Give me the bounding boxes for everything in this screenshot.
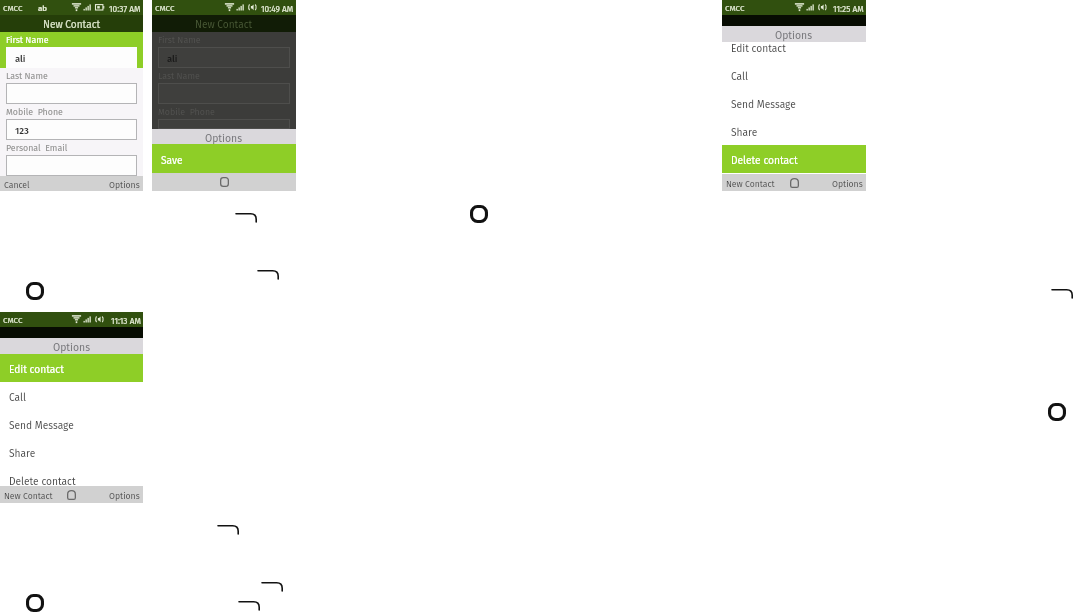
button[interactable]: Edit contact <box>0 354 143 382</box>
staticText: 11:13 AM <box>111 316 141 326</box>
button[interactable]: Mobile Phone <box>152 104 296 129</box>
staticText: 123 <box>15 125 29 136</box>
staticText: First Name <box>6 35 49 46</box>
button[interactable]: Options <box>109 490 143 500</box>
button[interactable]: Options <box>109 179 143 189</box>
staticText: Personal Email <box>6 143 68 154</box>
staticText: New Contact <box>43 19 101 31</box>
staticText: ali <box>15 53 26 64</box>
staticText: New Contact <box>726 179 775 189</box>
staticText: Options <box>775 29 813 41</box>
button[interactable]: Share <box>722 117 866 145</box>
button[interactable]: Send Message <box>0 410 143 438</box>
button[interactable]: New Contact <box>722 178 775 188</box>
staticText: Edit contact <box>731 42 786 54</box>
staticText: CMCC <box>155 4 175 14</box>
staticText: CMCC <box>3 4 23 14</box>
staticText: Share <box>731 126 758 138</box>
button[interactable]: Delete contact <box>0 466 143 486</box>
button[interactable]: Last Name <box>0 68 143 104</box>
staticText: Options <box>832 179 863 189</box>
staticText: Share <box>9 447 36 459</box>
staticText: CMCC <box>725 4 745 14</box>
staticText: Options <box>205 132 243 144</box>
button[interactable]: Last Name <box>152 68 296 104</box>
button[interactable]: Save <box>152 144 296 173</box>
button[interactable]: Edit contact <box>722 42 866 61</box>
staticText: Mobile Phone <box>158 107 215 118</box>
button[interactable]: Call <box>0 382 143 410</box>
button[interactable]: Home <box>220 177 229 187</box>
staticText: First Name <box>158 35 201 46</box>
staticText: Call <box>9 391 27 403</box>
button[interactable]: Call <box>722 61 866 89</box>
button[interactable]: Home <box>67 490 76 500</box>
staticText: New Contact <box>4 491 53 501</box>
staticText: Call <box>731 70 749 82</box>
staticText: Last Name <box>158 71 200 82</box>
staticText: ali <box>167 53 178 64</box>
button[interactable]: Personal Email <box>0 140 143 176</box>
staticText: Delete contact <box>731 154 798 166</box>
staticText: Cancel <box>4 180 30 190</box>
staticText: Send Message <box>9 419 74 431</box>
staticText: 10:37 AM <box>109 4 141 14</box>
staticText: Options <box>53 341 91 353</box>
button[interactable]: Delete contact <box>722 145 866 173</box>
staticText: Delete contact <box>9 475 76 486</box>
button[interactable]: Send Message <box>722 89 866 117</box>
staticText: 10:49 AM <box>261 4 294 14</box>
staticText: Mobile Phone <box>6 107 63 118</box>
staticText: 11:25 AM <box>833 4 864 14</box>
button[interactable]: New Contact <box>0 490 53 500</box>
button[interactable]: Options <box>832 178 866 188</box>
button[interactable]: Cancel <box>0 179 30 189</box>
staticText: Edit contact <box>9 363 64 375</box>
staticText: New Contact <box>195 19 253 31</box>
staticText: ab <box>38 4 48 14</box>
staticText: Options <box>109 180 140 190</box>
button[interactable]: Home <box>790 178 799 188</box>
staticText: Options <box>109 491 140 501</box>
button[interactable]: First Name <box>0 32 143 68</box>
staticText: Last Name <box>6 71 48 82</box>
button[interactable]: Mobile Phone <box>0 104 143 140</box>
button[interactable]: First Name <box>152 32 296 68</box>
staticText: Save <box>161 154 183 166</box>
staticText: Send Message <box>731 98 796 110</box>
button[interactable]: Share <box>0 438 143 466</box>
staticText: CMCC <box>3 316 23 326</box>
